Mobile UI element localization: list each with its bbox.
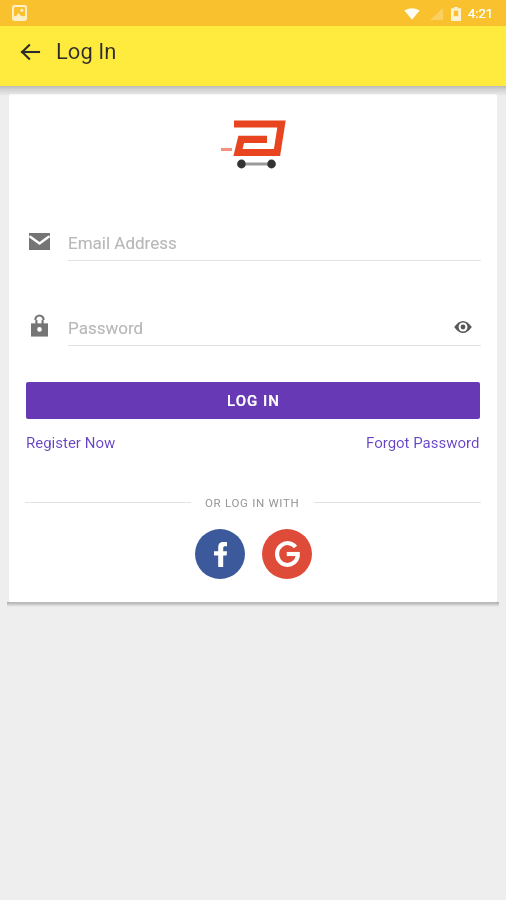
button[interactable]: Log in with Facebook xyxy=(195,529,245,579)
staticText: Password xyxy=(68,318,144,338)
staticText: Forgot Password xyxy=(366,434,480,452)
button[interactable]: Forgot Password xyxy=(366,434,480,452)
staticText: Log In xyxy=(56,39,117,65)
staticText: Email Address xyxy=(68,233,177,253)
staticText: 4:21 xyxy=(468,6,494,21)
staticText: OR LOG IN WITH xyxy=(205,496,300,509)
staticText: LOG IN xyxy=(227,392,280,410)
button[interactable]: Register Now xyxy=(26,434,116,452)
button[interactable]: Log in with Google xyxy=(262,529,312,579)
button[interactable]: Show password xyxy=(452,316,474,338)
button[interactable]: Back xyxy=(4,26,56,78)
button[interactable]: LOG IN xyxy=(26,382,480,419)
staticText: Register Now xyxy=(26,434,116,452)
